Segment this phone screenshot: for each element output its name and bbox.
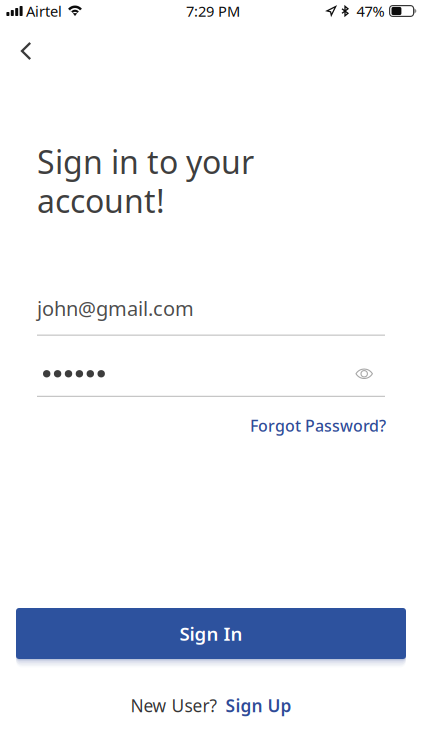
- staticText: 7:29 PM: [186, 1, 240, 21]
- staticText: Sign in to your: [37, 140, 254, 183]
- button[interactable]: Sign Up: [217, 691, 291, 720]
- staticText: New User?: [130, 694, 217, 717]
- button[interactable]: Forgot Password?: [250, 411, 386, 440]
- button[interactable]: Back: [0, 33, 48, 69]
- staticText: Forgot Password?: [250, 415, 386, 436]
- staticText: Airtel: [26, 1, 62, 21]
- staticText: Sign Up: [225, 694, 291, 717]
- button[interactable]: Show password: [355, 367, 385, 380]
- button[interactable]: Sign In: [16, 608, 406, 659]
- staticText: Sign In: [179, 621, 242, 646]
- staticText: john@gmail.com: [37, 295, 194, 322]
- staticText: 47%: [357, 1, 385, 21]
- staticText: account!: [37, 179, 165, 222]
